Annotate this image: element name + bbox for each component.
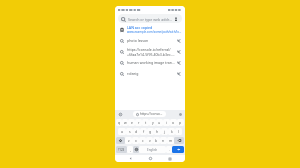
button[interactable]: j [161, 128, 168, 135]
button[interactable]: u [156, 119, 163, 126]
button[interactable]: s [126, 128, 133, 135]
button[interactable]: https://conso... [133, 111, 166, 117]
staticText: m [169, 138, 173, 143]
staticText: x [135, 138, 137, 143]
staticText: https://console.io/referral/+6faa7e14-5f… [127, 47, 176, 57]
button[interactable]: , [127, 146, 133, 153]
staticText: English [147, 148, 158, 152]
staticText: i [166, 120, 167, 125]
staticText: c [142, 138, 144, 143]
button[interactable]: human working image transparent [115, 57, 185, 68]
staticText: g [149, 129, 152, 134]
button[interactable]: b [153, 137, 160, 144]
staticText: p [179, 120, 182, 125]
staticText: t [145, 120, 147, 125]
staticText: d [135, 129, 138, 134]
button[interactable]: m [167, 137, 174, 144]
button[interactable]: a [118, 128, 126, 135]
staticText: roleeig [127, 71, 139, 76]
button[interactable]: Insert suggestion [176, 71, 182, 77]
staticText: human working image transparent [127, 60, 176, 65]
staticText: w [124, 120, 127, 125]
button[interactable]: g [147, 128, 154, 135]
staticText: v [149, 138, 151, 143]
button[interactable]: v [146, 137, 153, 144]
staticText: https://conso... [140, 112, 163, 116]
staticText: u [158, 120, 161, 125]
staticText: s [129, 129, 131, 134]
button[interactable]: Go [172, 146, 184, 153]
staticText: LAN acc copied [127, 25, 153, 30]
staticText: e [131, 120, 133, 125]
button[interactable]: Insert suggestion [176, 60, 182, 66]
button[interactable]: p [177, 119, 184, 126]
button[interactable]: y [149, 119, 156, 126]
staticText: photo lesson [127, 38, 149, 43]
button[interactable]: z [125, 137, 132, 144]
button[interactable]: r [135, 119, 142, 126]
button[interactable]: Back [127, 155, 134, 162]
button[interactable]: x [132, 137, 139, 144]
staticText: q [118, 120, 121, 125]
button[interactable]: . [166, 146, 172, 153]
button[interactable]: roleeig [115, 68, 185, 79]
button[interactable]: Insert suggestion [176, 49, 182, 55]
button[interactable]: ?123 [116, 146, 127, 153]
button[interactable]: English [139, 146, 166, 153]
button[interactable]: photo lesson [115, 35, 185, 46]
staticText: a [121, 129, 123, 134]
staticText: , [130, 147, 131, 152]
staticText: n [162, 138, 165, 143]
button[interactable]: o [170, 119, 177, 126]
button[interactable]: Keyboard settings [177, 111, 183, 117]
staticText: j [164, 129, 165, 134]
staticText: Search or type web address [128, 17, 173, 22]
staticText: h [156, 129, 159, 134]
button[interactable]: h [154, 128, 161, 135]
staticText: y [152, 120, 154, 125]
button[interactable]: LAN acc copied [115, 24, 185, 35]
button[interactable]: c [139, 137, 146, 144]
staticText: l [178, 129, 179, 134]
button[interactable]: Home [147, 155, 154, 162]
button[interactable]: Search or type web address [118, 14, 182, 23]
button[interactable]: Voice search [173, 16, 179, 22]
button[interactable]: https://console.io/referral/+6faa7e14-5f… [115, 46, 185, 57]
button[interactable]: l [175, 128, 182, 135]
button[interactable]: Recents [166, 155, 173, 162]
button[interactable]: e [128, 119, 135, 126]
button[interactable]: t [142, 119, 149, 126]
staticText: ?123 [118, 148, 125, 152]
button[interactable]: Insert suggestion [176, 38, 182, 44]
staticText: r [138, 120, 140, 125]
staticText: www.example.com/some/path/with/long/url [127, 30, 182, 34]
staticText: f [143, 129, 145, 134]
staticText: o [172, 120, 175, 125]
staticText: z [128, 138, 130, 143]
button[interactable]: q [116, 119, 122, 126]
button[interactable]: Backspace [174, 137, 184, 144]
button[interactable]: d [133, 128, 140, 135]
button[interactable]: i [163, 119, 170, 126]
button[interactable]: k [168, 128, 175, 135]
staticText: . [169, 147, 170, 152]
staticText: k [171, 129, 173, 134]
button[interactable]: w [122, 119, 128, 126]
button[interactable]: n [160, 137, 167, 144]
button[interactable]: Emoji [133, 146, 139, 153]
staticText: b [155, 138, 158, 143]
button[interactable]: Toolbar [117, 111, 123, 117]
button[interactable]: f [140, 128, 147, 135]
button[interactable]: Shift [116, 137, 125, 144]
